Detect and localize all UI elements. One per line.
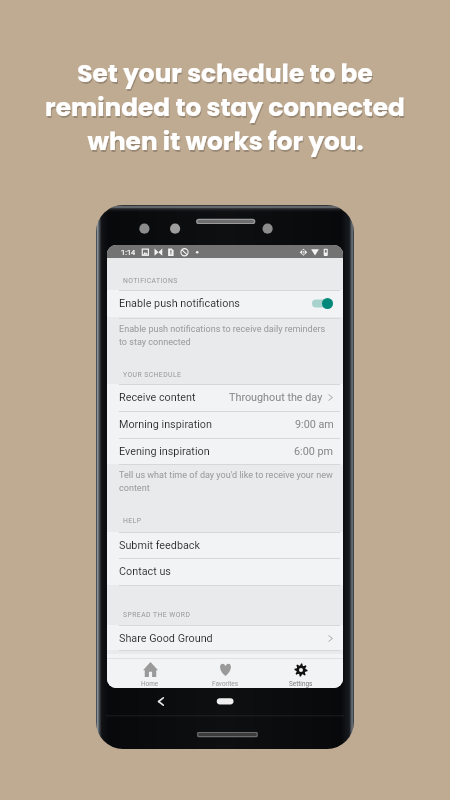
staticText: reminded to stay connected bbox=[46, 92, 406, 126]
staticText: Contact us bbox=[119, 565, 171, 578]
staticText: HELP bbox=[123, 517, 142, 525]
staticText: Tell us what time of day you'd like to r… bbox=[119, 470, 335, 493]
staticText: Enable push notifications to receive dai… bbox=[119, 324, 335, 347]
staticText: when it works for you. bbox=[87, 124, 364, 158]
button[interactable]: Contact us bbox=[107, 558, 343, 584]
button[interactable]: Home bbox=[112, 658, 188, 688]
staticText: 1:14 bbox=[121, 248, 136, 257]
button[interactable]: Favorites bbox=[188, 658, 263, 688]
button[interactable]: Settings bbox=[263, 658, 338, 688]
staticText: when it works for you. bbox=[88, 126, 365, 160]
button[interactable]: Morning inspiration bbox=[107, 411, 343, 437]
staticText: Set your schedule to be bbox=[78, 58, 374, 92]
button[interactable]: Evening inspiration bbox=[107, 438, 343, 464]
staticText: Throughout the day bbox=[229, 391, 323, 404]
staticText: Set your schedule to be bbox=[77, 56, 373, 90]
staticText: NOTIFICATIONS bbox=[123, 277, 178, 285]
button[interactable]: Enable push notifications bbox=[107, 290, 343, 317]
staticText: Morning inspiration bbox=[119, 418, 212, 431]
staticText: Settings bbox=[289, 680, 313, 688]
staticText: SPREAD THE WORD bbox=[123, 611, 191, 619]
staticText: Share Good Ground bbox=[119, 632, 213, 645]
staticText: 9:00 am bbox=[295, 418, 334, 431]
button[interactable]: Share Good Ground bbox=[107, 625, 343, 651]
button[interactable]: Submit feedback bbox=[107, 532, 343, 558]
staticText: Favorites bbox=[212, 680, 239, 688]
staticText: Submit feedback bbox=[119, 539, 200, 552]
staticText: reminded to stay connected bbox=[45, 90, 405, 124]
staticText: Receive content bbox=[119, 391, 196, 404]
staticText: 6:00 pm bbox=[294, 445, 334, 458]
staticText: Evening inspiration bbox=[119, 445, 210, 458]
staticText: YOUR SCHEDULE bbox=[123, 371, 182, 379]
button[interactable]: Receive content bbox=[107, 384, 343, 410]
staticText: Home bbox=[141, 680, 159, 688]
staticText: Enable push notifications bbox=[119, 297, 240, 310]
